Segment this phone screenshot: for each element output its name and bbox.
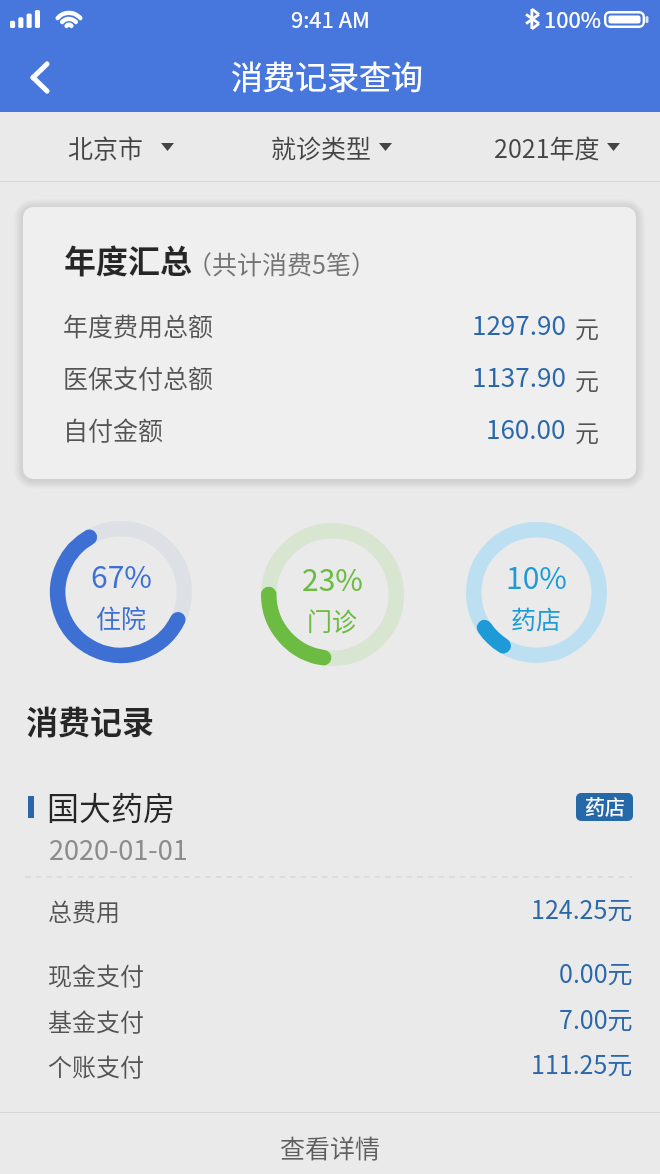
staticText: 100% <box>544 2 601 34</box>
staticText: 160.00 <box>486 409 566 447</box>
button[interactable]: 2021年度 <box>478 112 651 182</box>
staticText: 7.00元 <box>559 1000 633 1034</box>
button[interactable]: Back <box>8 46 68 112</box>
staticText: 元 <box>575 362 599 397</box>
staticText: 124.25元 <box>531 890 633 924</box>
staticText: 1137.90 <box>472 357 566 395</box>
staticText: 门诊 <box>307 602 358 638</box>
staticText: 北京市 <box>68 129 144 165</box>
staticText: 个账支付 <box>48 1048 144 1082</box>
staticText: 10% <box>506 554 567 597</box>
staticText: 查看详情 <box>280 1129 381 1165</box>
staticText: （共计消费5笔） <box>187 245 376 281</box>
staticText: 年度费用总额 <box>63 307 214 343</box>
button[interactable]: 查看详情 <box>0 1113 660 1174</box>
staticText: 0.00元 <box>559 954 633 988</box>
staticText: 元 <box>575 414 599 449</box>
staticText: 2021年度 <box>494 129 600 165</box>
staticText: 国大药房 <box>47 783 176 829</box>
staticText: 医保支付总额 <box>63 359 214 395</box>
staticText: 年度汇总 <box>64 236 193 282</box>
staticText: 9:41 AM <box>291 2 370 34</box>
button[interactable]: 北京市 <box>52 112 189 182</box>
staticText: 药店 <box>511 600 562 636</box>
button[interactable]: 国大药房 <box>0 760 660 1112</box>
staticText: 23% <box>302 556 363 599</box>
staticText: 药店 <box>585 793 625 820</box>
staticText: 基金支付 <box>48 1003 144 1037</box>
staticText: 现金支付 <box>48 957 144 991</box>
staticText: 67% <box>91 553 152 596</box>
button[interactable]: 就诊类型 <box>255 112 408 182</box>
staticText: 自付金额 <box>63 411 164 447</box>
staticText: 2020-01-01 <box>49 829 188 868</box>
staticText: 消费记录 <box>26 697 155 743</box>
staticText: 111.25元 <box>531 1045 633 1079</box>
staticText: 消费记录查询 <box>231 52 424 98</box>
staticText: 元 <box>575 310 599 345</box>
staticText: 就诊类型 <box>271 129 372 165</box>
staticText: 总费用 <box>48 893 120 927</box>
staticText: 1297.90 <box>472 305 566 343</box>
staticText: 住院 <box>96 599 147 635</box>
